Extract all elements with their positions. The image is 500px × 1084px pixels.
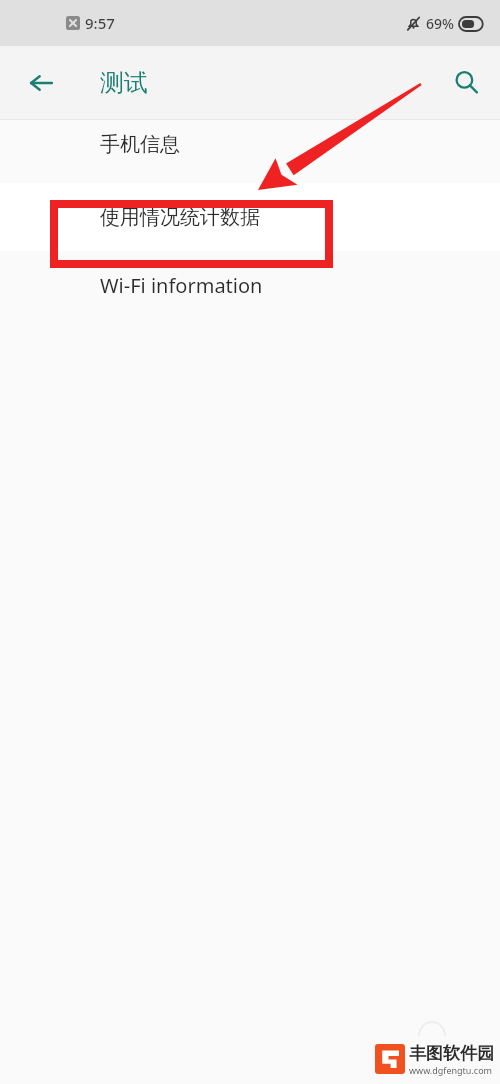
staticText: 测试 bbox=[100, 68, 148, 98]
button[interactable]: Wi-Fi information bbox=[0, 261, 500, 310]
staticText: 使用情况统计数据 bbox=[100, 205, 260, 230]
button[interactable]: 手机信息 bbox=[0, 120, 500, 169]
staticText: Wi-Fi information bbox=[100, 272, 263, 299]
button[interactable]: Back bbox=[17, 59, 65, 107]
staticText: 69% bbox=[426, 14, 454, 33]
staticText: 手机信息 bbox=[100, 132, 180, 157]
button[interactable]: 使用情况统计数据 bbox=[0, 183, 500, 251]
button[interactable]: Search bbox=[443, 59, 491, 107]
staticText: 丰图软件园 bbox=[409, 1043, 494, 1064]
staticText: www.dgfengtu.com bbox=[409, 1064, 493, 1076]
staticText: 9:57 bbox=[85, 13, 115, 33]
